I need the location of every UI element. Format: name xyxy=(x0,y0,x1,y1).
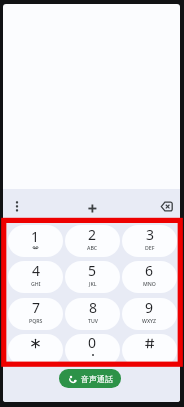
staticText: 5 xyxy=(88,261,97,280)
staticText: 3 xyxy=(146,225,155,244)
staticText: DEF xyxy=(145,244,155,251)
staticText: ABC xyxy=(87,244,98,251)
staticText: GHI xyxy=(31,280,41,287)
staticText: 0 xyxy=(88,334,97,352)
staticText: 4 xyxy=(32,261,41,280)
staticText: 2 xyxy=(88,225,97,244)
staticText: WXYZ xyxy=(142,317,157,324)
staticText: PQRS xyxy=(29,317,43,324)
staticText: 8 xyxy=(89,298,98,317)
staticText: 6 xyxy=(145,261,154,280)
staticText: 音声通話 xyxy=(81,374,113,384)
staticText: 1 xyxy=(31,227,40,246)
staticText: JKL xyxy=(89,280,97,287)
staticText: 9 xyxy=(145,298,154,317)
staticText: 7 xyxy=(32,298,41,317)
staticText: MNO xyxy=(143,280,156,287)
staticText: TUV xyxy=(88,317,98,324)
